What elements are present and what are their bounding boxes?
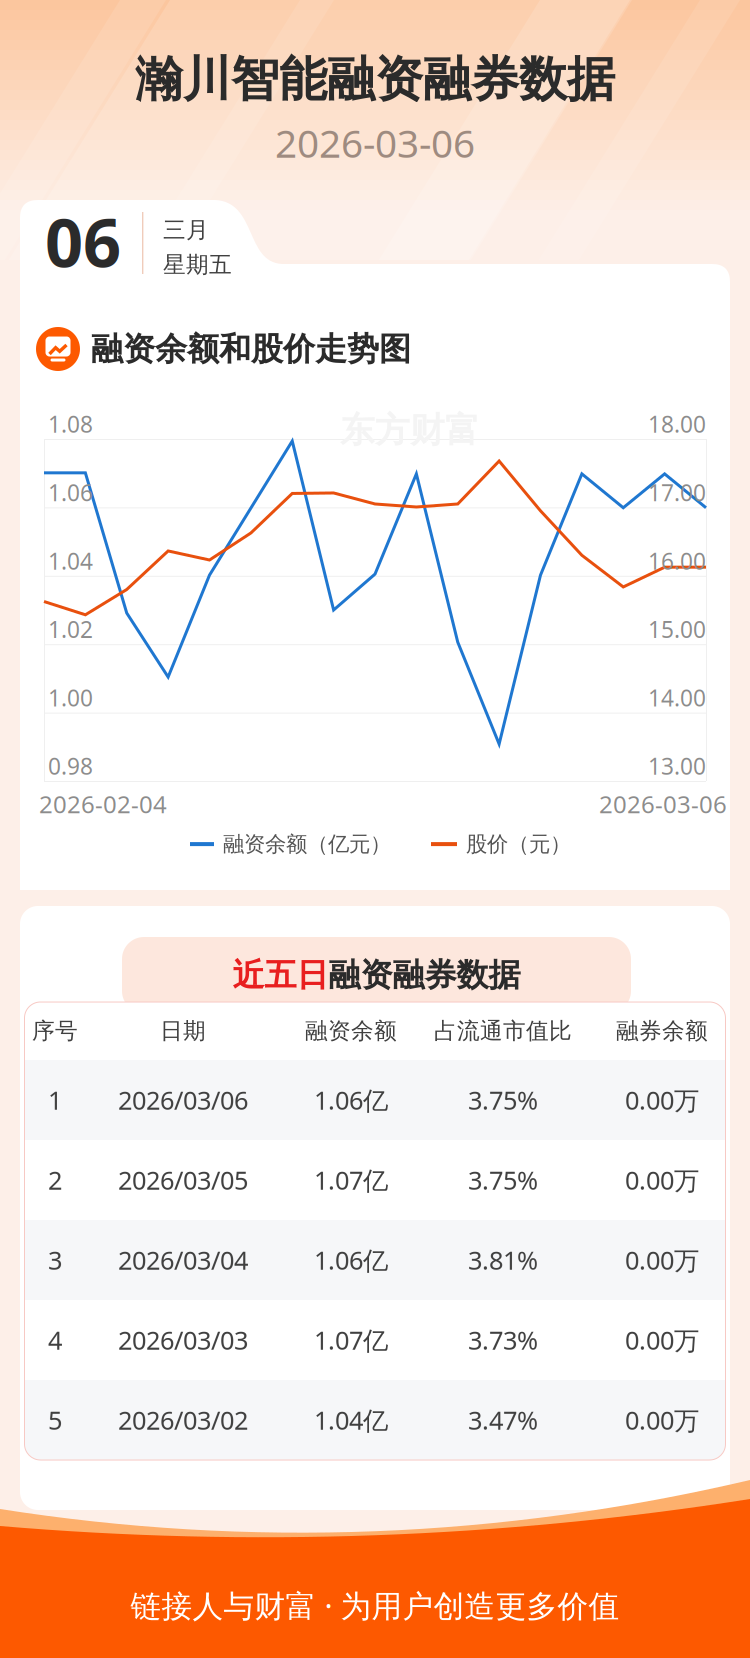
staticText: 0.00万 [625,1163,699,1197]
staticText: 0.00万 [625,1083,699,1117]
staticText: 0.98 [48,751,93,781]
staticText: 3.75% [468,1083,538,1117]
staticText: 融资余额（亿元） [223,831,391,857]
staticText: 17.00 [648,477,706,507]
staticText: 1.04 [48,546,93,576]
staticText: 18.00 [648,409,706,439]
staticText: 日期 [160,1017,206,1045]
staticText: 东方财富 [340,409,480,452]
staticText: 序号 [32,1017,78,1045]
staticText: 2026/03/02 [118,1403,248,1437]
staticText: 1.07亿 [314,1163,388,1197]
staticText: 融券余额 [616,1017,708,1045]
staticText: 2026-03-06 [599,788,727,820]
staticText: 股价（元） [466,831,571,857]
staticText: 1.04亿 [314,1403,388,1437]
staticText: 融资余额和股价走势图 [91,329,411,369]
staticText: 13.00 [648,751,706,781]
staticText: 3 [48,1243,62,1277]
staticText: 16.00 [648,546,706,576]
staticText: 3.81% [468,1243,538,1277]
staticText: 2026-02-04 [39,788,167,820]
staticText: 3.47% [468,1403,538,1437]
staticText: 1.07亿 [314,1323,388,1357]
staticText: 1.06亿 [314,1243,388,1277]
staticText: 星期五 [163,251,232,279]
staticText: 1.02 [48,614,93,644]
staticText: 1 [48,1083,62,1117]
staticText: 2026/03/03 [118,1323,248,1357]
staticText: 融资融券数据 [328,955,520,995]
staticText: 5 [48,1403,62,1437]
staticText: 占流通市值比 [434,1017,572,1045]
staticText: 14.00 [648,683,706,713]
staticText: 链接人与财富 · 为用户创造更多价值 [130,1585,619,1626]
staticText: 1.06亿 [314,1083,388,1117]
staticText: 瀚川智能融资融券数据 [135,50,615,109]
staticText: 15.00 [648,614,706,644]
staticText: 1.00 [48,683,93,713]
staticText: 三月 [163,216,209,244]
staticText: 06 [45,197,121,285]
staticText: 融资余额 [305,1017,397,1045]
staticText: 0.00万 [625,1323,699,1357]
staticText: 1.06 [48,477,93,507]
staticText: 2026/03/06 [118,1083,248,1117]
staticText: 3.75% [468,1163,538,1197]
staticText: 2 [48,1163,62,1197]
staticText: 0.00万 [625,1403,699,1437]
staticText: 2026/03/05 [118,1163,248,1197]
staticText: 2026-03-06 [275,117,475,168]
staticText: 0.00万 [625,1243,699,1277]
staticText: 近五日 [232,955,328,995]
staticText: 1.08 [48,409,93,439]
staticText: 2026/03/04 [118,1243,248,1277]
staticText: 4 [48,1323,62,1357]
staticText: 3.73% [468,1323,538,1357]
